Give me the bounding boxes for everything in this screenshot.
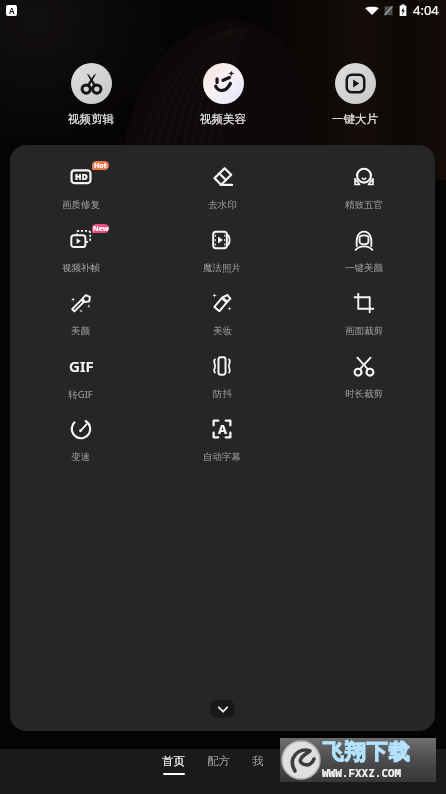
staticText: 画质修复 (62, 199, 100, 211)
staticText: A (9, 5, 15, 16)
staticText: 美妆 (213, 325, 232, 337)
button[interactable]: Collapse panel (210, 700, 235, 718)
staticText: 视频剪辑 (68, 112, 114, 126)
staticText: 配方 (207, 754, 230, 768)
button[interactable]: 防抖 (151, 353, 293, 416)
button[interactable]: GIF (10, 353, 151, 416)
staticText: 一键美颜 (345, 262, 383, 274)
button[interactable]: 视频剪辑 (25, 63, 157, 126)
button[interactable]: 时长裁剪 (293, 353, 435, 416)
button[interactable]: 去水印 (151, 164, 293, 227)
staticText: 视频美容 (200, 112, 246, 126)
button[interactable]: 视频美容 (157, 63, 289, 126)
button[interactable]: 变速 (10, 416, 151, 479)
button[interactable]: HD (10, 164, 151, 227)
button[interactable]: 首页 (160, 749, 187, 775)
staticText: WWW.FXXZ.COM (322, 765, 402, 780)
button[interactable]: 画面裁剪 (293, 290, 435, 353)
staticText: Hot (94, 161, 107, 170)
staticText: 我 (252, 754, 264, 768)
staticText: 4:04 (413, 1, 439, 19)
button[interactable]: New (10, 227, 151, 290)
button[interactable]: 我 (250, 749, 266, 775)
button[interactable]: 美妆 (151, 290, 293, 353)
staticText: 魔法照片 (203, 262, 241, 274)
button[interactable]: 一键大片 (289, 63, 421, 126)
button[interactable]: 一键美颜 (293, 227, 435, 290)
button[interactable]: A (151, 416, 293, 479)
staticText: A (218, 420, 227, 438)
staticText: 去水印 (208, 199, 237, 211)
staticText: 飞翔下载 (322, 739, 410, 765)
button[interactable]: 精致五官 (293, 164, 435, 227)
staticText: GIF (69, 356, 94, 376)
staticText: 时长裁剪 (345, 388, 383, 400)
staticText: 变速 (71, 451, 90, 463)
staticText: 首页 (162, 754, 185, 768)
button[interactable]: 魔法照片 (151, 227, 293, 290)
staticText: 转GIF (68, 388, 93, 401)
staticText: 画面裁剪 (345, 325, 383, 337)
staticText: 防抖 (213, 388, 232, 400)
staticText: 一键大片 (332, 112, 378, 126)
staticText: 美颜 (71, 325, 90, 337)
staticText: HD (75, 171, 88, 183)
staticText: 视频补帧 (62, 262, 100, 274)
staticText: 精致五官 (345, 199, 383, 211)
staticText: 自动字幕 (203, 451, 241, 463)
staticText: New (93, 224, 109, 233)
button[interactable]: 配方 (205, 749, 232, 775)
button[interactable]: 美颜 (10, 290, 151, 353)
